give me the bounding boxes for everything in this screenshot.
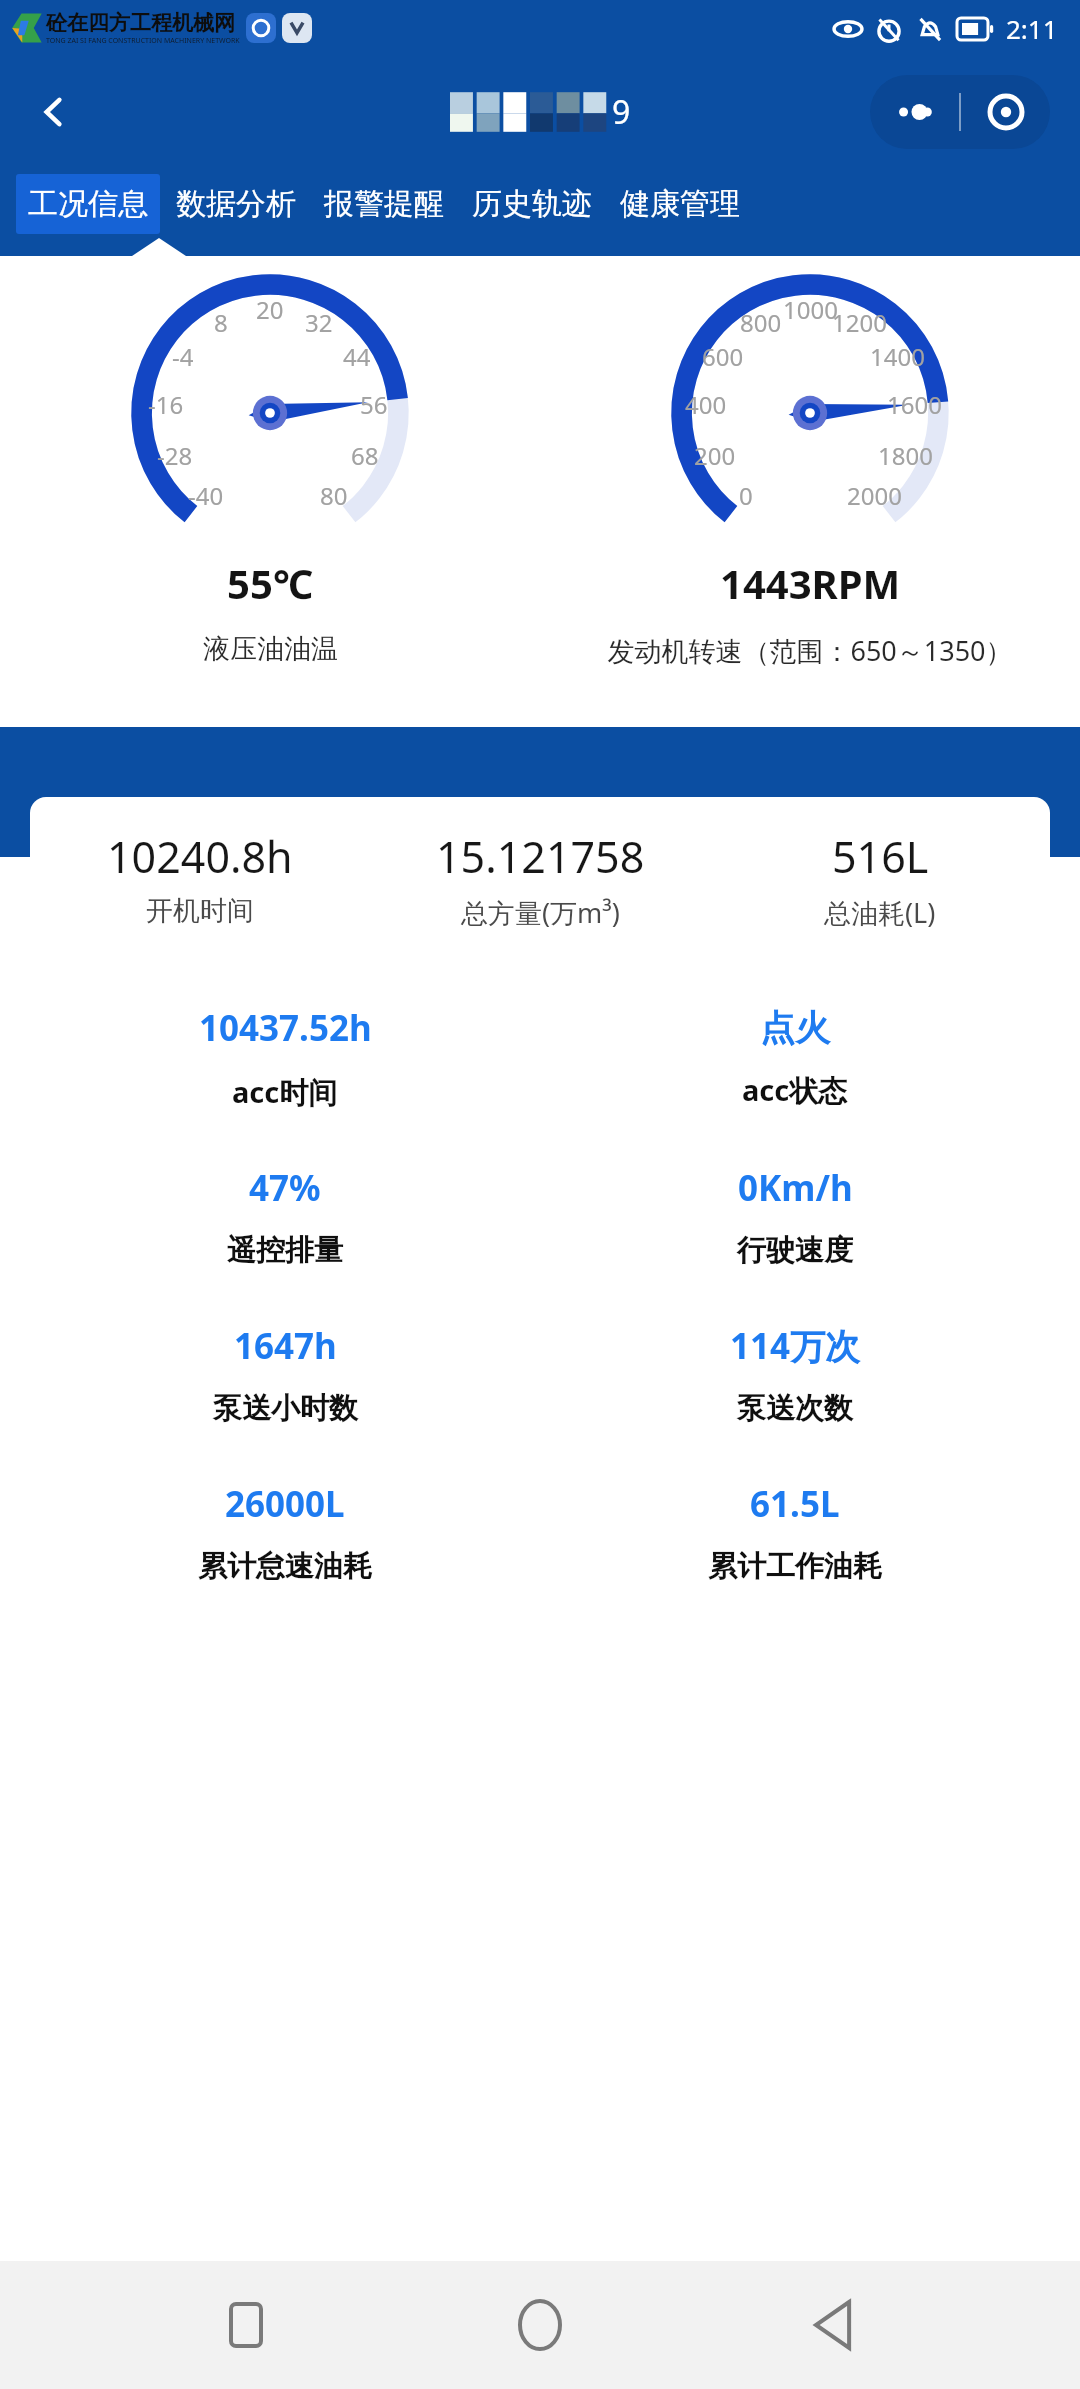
button[interactable]: Recent apps <box>198 2277 294 2373</box>
staticText: 200 <box>694 439 736 472</box>
staticText: 数据分析 <box>176 185 296 223</box>
staticText: 400 <box>685 388 727 421</box>
button[interactable]: Back <box>26 85 80 139</box>
staticText: 2000 <box>847 479 902 512</box>
staticText: 累计工作油耗 <box>708 1548 882 1585</box>
button[interactable]: 26000L <box>30 1453 540 1611</box>
staticText: 0Km/h <box>738 1164 853 1212</box>
staticText: 55℃ <box>227 556 313 610</box>
staticText: 15.121758 <box>436 827 645 886</box>
staticText: 1000 <box>783 293 838 326</box>
staticText: acc状态 <box>742 1070 848 1110</box>
button[interactable]: 0Km/h <box>540 1137 1050 1295</box>
staticText: 80 <box>320 479 348 512</box>
staticText: -4 <box>172 340 194 373</box>
staticText: 液压油油温 <box>203 632 338 666</box>
staticText: 26000L <box>225 1480 345 1528</box>
staticText: 9 <box>612 90 631 134</box>
staticText: 1600 <box>887 388 942 421</box>
staticText: 总方量(万m³) <box>461 894 620 931</box>
staticText: 516L <box>832 827 929 886</box>
staticText: 2:11 <box>1006 11 1058 46</box>
staticText: 发动机转速（范围：650～1350） <box>607 632 1013 669</box>
staticText: 1800 <box>878 439 933 472</box>
staticText: -40 <box>188 479 224 512</box>
staticText: TONG ZAI SI FANG CONSTRUCTION MACHINERY … <box>46 36 240 46</box>
staticText: 10240.8h <box>107 827 293 886</box>
staticText: 1443RPM <box>720 556 901 610</box>
staticText: 44 <box>343 340 371 373</box>
staticText: -28 <box>157 439 193 472</box>
button[interactable]: 61.5L <box>540 1453 1050 1611</box>
staticText: 遥控排量 <box>227 1232 343 1269</box>
button[interactable]: More options <box>870 75 959 149</box>
button[interactable]: Close <box>961 75 1050 149</box>
staticText: -16 <box>148 388 184 421</box>
button[interactable]: 15.121758 <box>370 827 710 931</box>
staticText: acc时间 <box>232 1072 338 1112</box>
button[interactable]: 报警提醒 <box>312 174 456 234</box>
staticText: 47% <box>249 1164 321 1212</box>
staticText: 10437.52h <box>199 1004 372 1052</box>
staticText: 800 <box>740 306 782 339</box>
button[interactable]: 1647h <box>30 1295 540 1453</box>
button[interactable]: 健康管理 <box>608 174 752 234</box>
staticText: 工况信息 <box>28 185 148 223</box>
staticText: 砼在四方工程机械网 <box>46 10 235 36</box>
staticText: 点火 <box>760 1006 830 1050</box>
button[interactable]: 数据分析 <box>164 174 308 234</box>
button[interactable]: 516L <box>710 827 1050 931</box>
staticText: 累计怠速油耗 <box>198 1548 372 1585</box>
staticText: 0 <box>739 479 753 512</box>
staticText: 8 <box>214 306 228 339</box>
staticText: 泵送小时数 <box>213 1390 358 1427</box>
staticText: 600 <box>702 340 744 373</box>
staticText: 开机时间 <box>146 894 254 928</box>
staticText: 61.5L <box>750 1480 840 1528</box>
staticText: 历史轨迹 <box>472 185 592 223</box>
button[interactable]: 点火 <box>540 979 1050 1137</box>
staticText: 32 <box>305 306 333 339</box>
button[interactable]: Home <box>492 2277 588 2373</box>
button[interactable]: 10240.8h <box>30 827 370 928</box>
staticText: 行驶速度 <box>737 1232 853 1269</box>
staticText: 1400 <box>870 340 925 373</box>
button[interactable]: 114万次 <box>540 1295 1050 1453</box>
button[interactable]: 10437.52h <box>30 979 540 1137</box>
staticText: 20 <box>256 293 284 326</box>
button[interactable]: 工况信息 <box>16 174 160 234</box>
staticText: 报警提醒 <box>324 185 444 223</box>
button[interactable]: 47% <box>30 1137 540 1295</box>
button[interactable]: 历史轨迹 <box>460 174 604 234</box>
staticText: 114万次 <box>730 1322 861 1370</box>
staticText: 1200 <box>832 306 887 339</box>
staticText: 1647h <box>234 1322 337 1370</box>
staticText: 泵送次数 <box>737 1390 853 1427</box>
button[interactable]: Back <box>786 2277 882 2373</box>
staticText: 总油耗(L) <box>824 894 936 931</box>
staticText: 56 <box>360 388 388 421</box>
staticText: 68 <box>351 439 379 472</box>
staticText: 健康管理 <box>620 185 740 223</box>
